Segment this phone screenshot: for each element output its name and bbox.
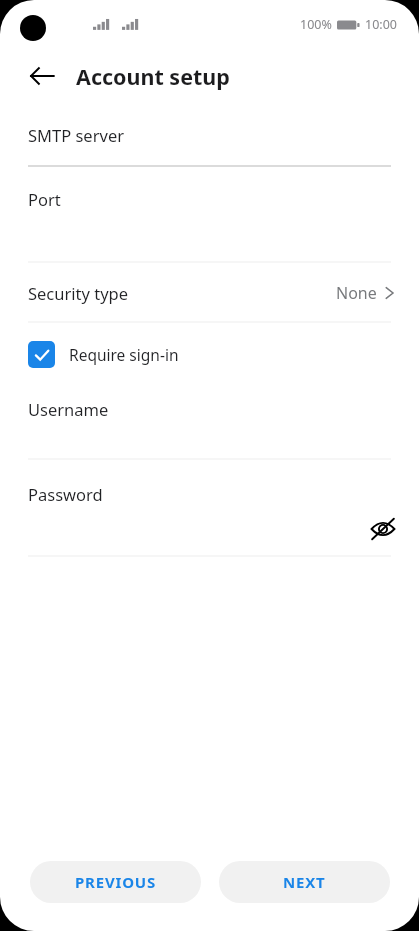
staticText: Port xyxy=(28,188,61,210)
button[interactable]: PREVIOUS xyxy=(30,861,201,903)
staticText: Security type xyxy=(28,282,129,304)
button[interactable]: SMTP server xyxy=(0,104,419,166)
other: Require sign-in checked xyxy=(28,341,55,368)
staticText: PREVIOUS xyxy=(75,872,157,892)
button[interactable]: Back xyxy=(18,52,66,100)
button[interactable]: Username xyxy=(0,384,419,459)
staticText: Account setup xyxy=(76,62,230,91)
button[interactable]: Port xyxy=(0,168,419,262)
button[interactable]: Show password xyxy=(361,507,405,551)
button[interactable]: Security type xyxy=(0,264,419,322)
staticText: Require sign-in xyxy=(69,344,179,365)
staticText: Username xyxy=(28,398,109,420)
staticText: 100% xyxy=(300,16,332,33)
staticText: Password xyxy=(28,483,103,505)
staticText: SMTP server xyxy=(28,124,124,146)
button[interactable]: NEXT xyxy=(219,861,390,903)
staticText: 10:00 xyxy=(365,16,397,33)
staticText: NEXT xyxy=(283,872,326,892)
staticText: None xyxy=(336,282,377,304)
button[interactable]: Require sign-in checked xyxy=(0,324,419,384)
